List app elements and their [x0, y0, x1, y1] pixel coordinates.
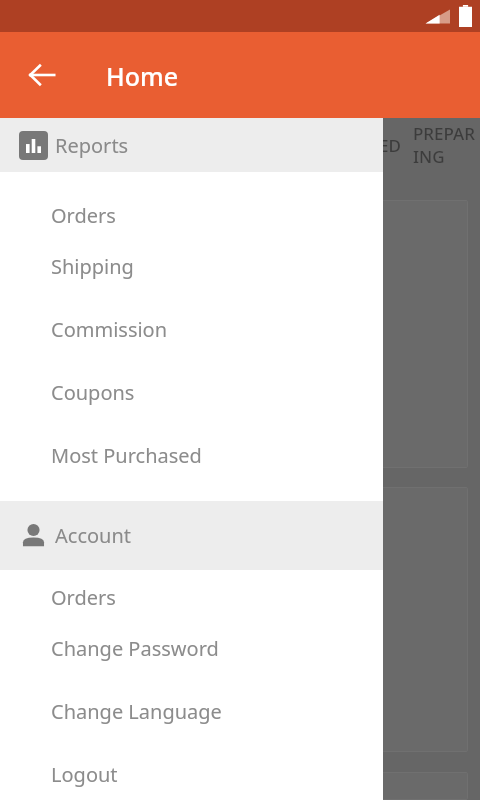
button[interactable]: Commission: [0, 298, 383, 361]
button[interactable]: Most Purchased: [0, 424, 383, 487]
staticText: Account: [55, 522, 132, 549]
button[interactable]: PREPARING: [413, 118, 480, 172]
button[interactable]: Coupons: [0, 361, 383, 424]
staticText: Logout: [51, 761, 118, 788]
button[interactable]: Logout: [0, 743, 383, 800]
button[interactable]: Change Language: [0, 680, 383, 743]
staticText: Change Password: [51, 635, 219, 662]
button[interactable]: Account: [0, 501, 383, 570]
staticText: SHIPPED: [330, 134, 401, 157]
button[interactable]: Orders: [0, 578, 383, 617]
staticText: PREPARING: [413, 122, 480, 168]
button[interactable]: Edit: [12, 487, 468, 752]
button[interactable]: SHIPPED: [318, 118, 413, 172]
staticText: Change Language: [51, 698, 222, 725]
staticText: Coupons: [51, 379, 135, 406]
button[interactable]: Back: [18, 51, 66, 99]
button[interactable]: Edit: [12, 200, 468, 468]
button[interactable]: Orders: [0, 196, 383, 235]
staticText: Commission: [51, 316, 168, 343]
staticText: Orders: [51, 202, 116, 229]
button[interactable]: Shipping: [0, 235, 383, 298]
staticText: Most Purchased: [51, 442, 202, 469]
button[interactable]: Reports: [0, 118, 383, 172]
staticText: Orders: [51, 584, 116, 611]
staticText: Home: [106, 59, 179, 93]
button[interactable]: Edit: [12, 772, 468, 800]
button[interactable]: Change Password: [0, 617, 383, 680]
staticText: Shipping: [51, 253, 134, 280]
staticText: Reports: [55, 132, 129, 159]
